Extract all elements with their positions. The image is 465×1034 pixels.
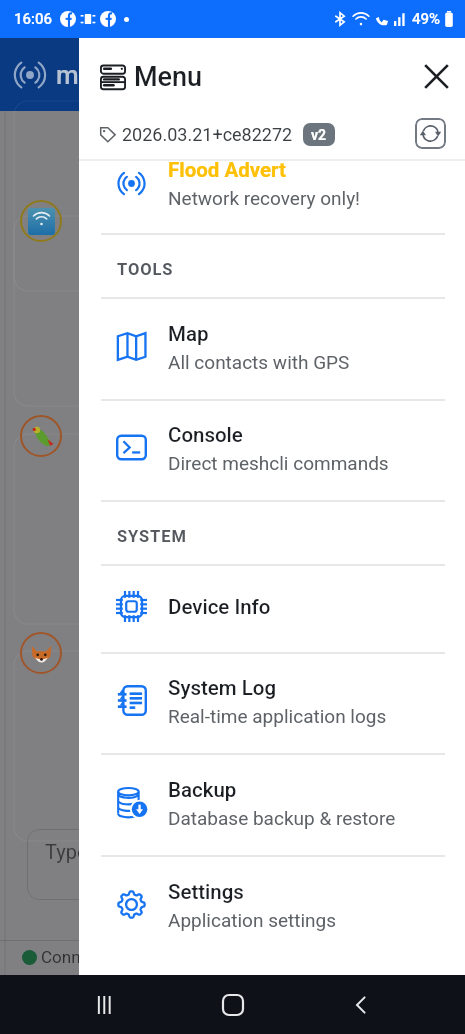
button[interactable]: Recents [80,981,128,1029]
button[interactable]: Device Info [79,566,465,652]
button[interactable]: Settings [79,857,465,957]
staticText: Direct meshcli commands [168,452,389,474]
staticText: Application settings [168,909,337,931]
staticText: 16:06 [14,10,53,28]
button[interactable]: Back [337,981,385,1029]
staticText: Settings [168,880,244,904]
staticText: 2026.03.21+ce82272 [122,124,293,145]
staticText: SYSTEM [117,527,187,546]
button[interactable]: Map [79,299,465,399]
staticText: Conne [41,947,90,967]
staticText: Map [168,322,209,346]
staticText: All contacts with GPS [168,351,350,373]
staticText: Device Info [168,595,271,619]
staticText: Database backup & restore [168,807,396,829]
staticText: Console [168,423,243,447]
staticText: Type [45,840,88,863]
button[interactable]: Backup [79,755,465,855]
staticText: Flood Advert [168,161,287,182]
button[interactable]: Home [209,981,257,1029]
staticText: TOOLS [117,260,174,279]
button[interactable]: System Log [79,654,465,753]
button[interactable]: Close [414,54,458,98]
staticText: Real-time application logs [168,705,387,727]
staticText: System Log [168,676,277,700]
button[interactable]: Console [79,401,465,500]
button[interactable]: Type [27,829,147,900]
staticText: 49% [412,10,441,28]
staticText: Backup [168,778,237,802]
button[interactable]: Refresh [415,118,446,149]
staticText: Network recovery only! [168,187,361,209]
staticText: Menu [134,61,203,93]
staticText: v2 [311,127,327,143]
staticText: mc [56,60,93,90]
button[interactable]: Flood Advert [79,161,465,233]
